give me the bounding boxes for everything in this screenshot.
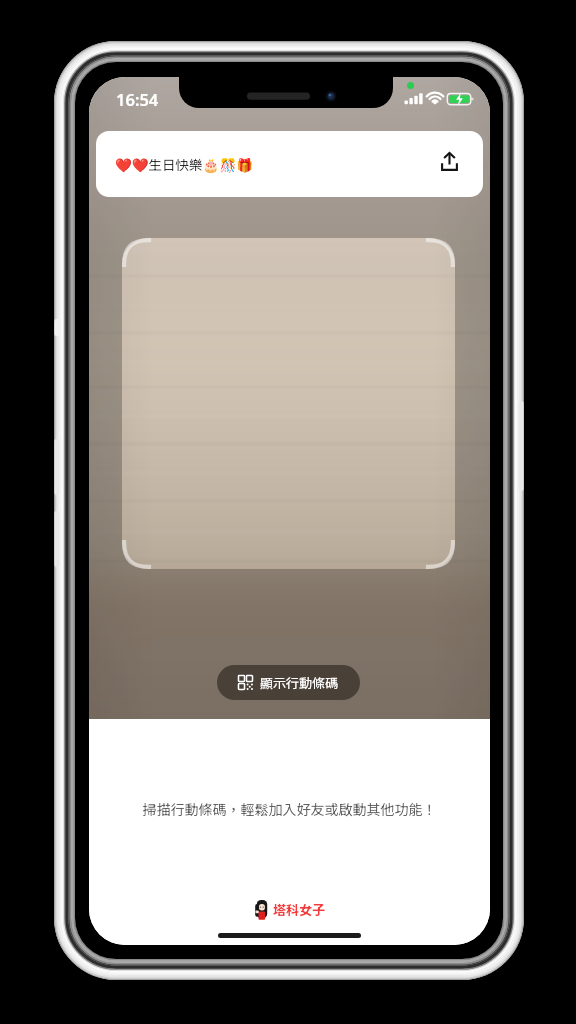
- staticText: 掃描行動條碼，輕鬆加入好友或啟動其他功能！: [89, 799, 490, 819]
- staticText: ❤️❤️生日快樂🎂🎊🎁: [115, 154, 254, 174]
- button[interactable]: 顯示行動條碼: [217, 665, 360, 700]
- staticText: 16:54: [116, 88, 159, 110]
- button[interactable]: ❤️❤️生日快樂🎂🎊🎁: [96, 131, 483, 197]
- button[interactable]: Share: [433, 145, 465, 177]
- staticText: 塔科女子: [273, 900, 326, 919]
- staticText: 顯示行動條碼: [260, 673, 339, 692]
